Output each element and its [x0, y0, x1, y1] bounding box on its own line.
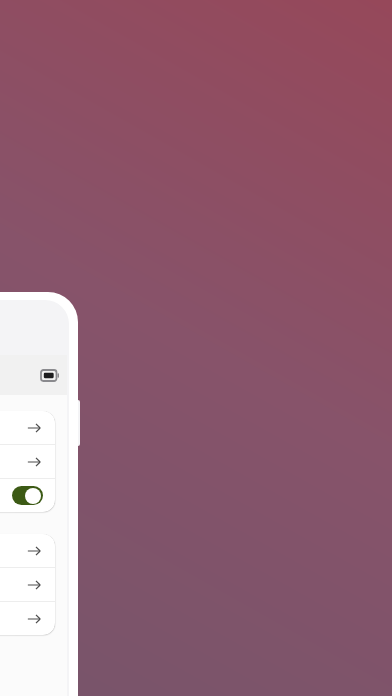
button[interactable]: Open [0, 602, 55, 635]
button[interactable]: Open [0, 445, 55, 478]
other: Battery [41, 370, 59, 381]
button[interactable]: Toggle on [0, 479, 55, 512]
other: Open [27, 421, 41, 435]
other: Open [27, 455, 41, 469]
other: Open [27, 578, 41, 592]
other: Open [27, 612, 41, 626]
other: Open [27, 544, 41, 558]
other: Toggle on [12, 486, 43, 505]
button[interactable]: Open [0, 411, 55, 444]
button[interactable]: Open [0, 568, 55, 601]
button[interactable]: Open [0, 534, 55, 567]
